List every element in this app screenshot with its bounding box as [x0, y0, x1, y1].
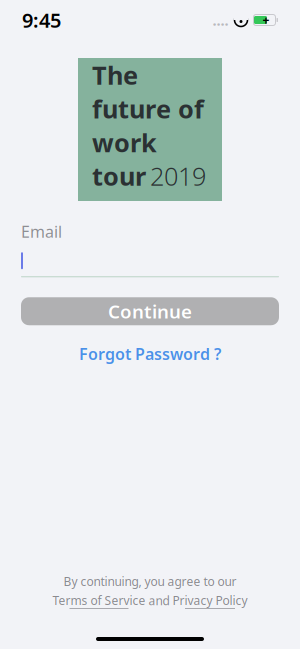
staticText: Terms of Service [52, 592, 145, 608]
staticText: and [148, 593, 169, 609]
staticText: + [262, 12, 269, 28]
button[interactable]: Terms of Service [52, 592, 145, 609]
staticText: By continuing, you agree to our [63, 573, 236, 589]
staticText: The [92, 58, 138, 92]
staticText: .... [212, 10, 228, 30]
staticText: future of work [92, 92, 204, 159]
staticText: 2019 [150, 159, 206, 193]
staticText: 9:45 [22, 7, 61, 33]
staticText: Email [21, 221, 62, 242]
staticText: Forgot Password ? [79, 343, 221, 364]
button[interactable]: Privacy Policy [172, 592, 247, 609]
staticText: tour [92, 159, 146, 193]
button[interactable]: Continue [21, 297, 279, 325]
button[interactable]: Forgot Password ? [69, 337, 231, 370]
staticText: Continue [108, 299, 192, 324]
staticText: Privacy Policy [172, 592, 247, 608]
